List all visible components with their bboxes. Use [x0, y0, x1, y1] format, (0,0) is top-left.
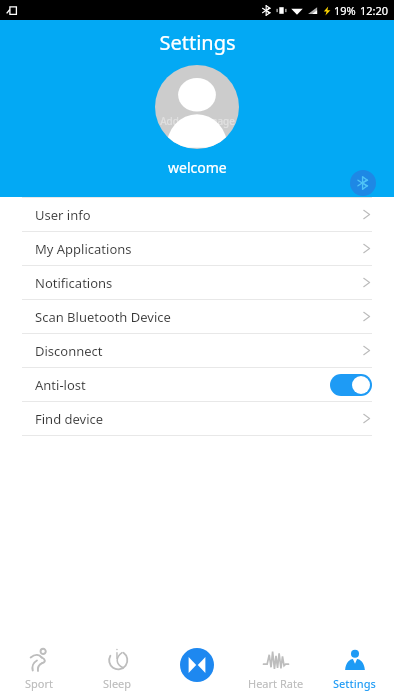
staticText: welcome: [168, 158, 227, 177]
button[interactable]: Disconnect: [0, 334, 394, 367]
staticText: Find device: [35, 410, 104, 428]
staticText: 12:20: [360, 3, 389, 18]
staticText: Settings: [159, 29, 236, 56]
staticText: Sport: [25, 676, 53, 691]
button[interactable]: Scan Bluetooth Device: [0, 300, 394, 333]
button[interactable]: Bluetooth: [350, 170, 376, 196]
staticText: Anti-lost: [35, 376, 86, 394]
staticText: Notifications: [35, 274, 113, 292]
staticText: Add your image: [160, 114, 235, 128]
staticText: Settings: [333, 676, 376, 691]
button[interactable]: My Applications: [0, 232, 394, 265]
staticText: Heart Rate: [248, 676, 304, 691]
button[interactable]: Find device: [0, 402, 394, 435]
staticText: 19%: [334, 3, 356, 18]
button[interactable]: Settings: [315, 638, 394, 700]
staticText: Disconnect: [35, 342, 103, 360]
staticText: Scan Bluetooth Device: [35, 308, 171, 326]
button[interactable]: Notifications: [0, 266, 394, 299]
button[interactable]: Sleep: [78, 638, 157, 700]
staticText: Sleep: [103, 676, 132, 691]
button[interactable]: Heart Rate: [236, 638, 315, 700]
button[interactable]: Connect: [157, 638, 236, 700]
button[interactable]: Sport: [0, 638, 78, 700]
staticText: My Applications: [35, 240, 132, 258]
button[interactable]: Add your image: [155, 65, 239, 149]
staticText: User info: [35, 206, 91, 224]
button[interactable]: User info: [0, 198, 394, 231]
button[interactable]: Anti-lost: [0, 368, 394, 401]
